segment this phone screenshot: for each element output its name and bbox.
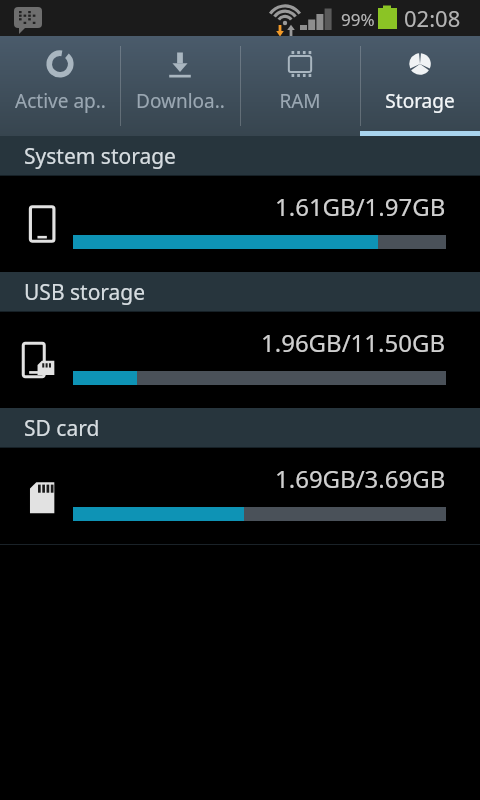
button[interactable]: Active ap.. [0, 36, 120, 136]
staticText: USB storage [24, 278, 146, 307]
staticText: 1.61GB/1.97GB [275, 190, 446, 223]
button[interactable]: Storage [360, 36, 480, 136]
button[interactable]: Downloa.. [120, 36, 240, 136]
other: System storage [22, 203, 64, 245]
staticText: 1.69GB/3.69GB [275, 462, 446, 495]
other: SD card [22, 475, 64, 517]
button[interactable]: SD card [0, 448, 480, 544]
staticText: RAM [279, 88, 321, 114]
staticText: Storage [385, 88, 455, 114]
other: USB storage [22, 339, 64, 381]
staticText: 1.96GB/11.50GB [261, 326, 446, 359]
staticText: 99% [341, 8, 375, 31]
staticText: SD card [24, 414, 100, 443]
button[interactable]: USB storage [0, 312, 480, 408]
button[interactable]: System storage [0, 176, 480, 272]
staticText: System storage [24, 142, 176, 171]
staticText: 02:08 [404, 3, 461, 33]
staticText: Downloa.. [136, 88, 225, 114]
staticText: Active ap.. [15, 88, 106, 114]
button[interactable]: RAM [240, 36, 360, 136]
